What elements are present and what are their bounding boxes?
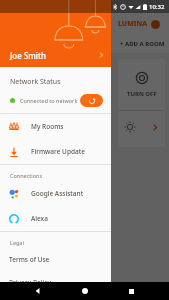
button[interactable]: My Rooms: [0, 114, 111, 139]
staticText: Connections: [10, 172, 43, 179]
button[interactable]: Alexa: [0, 206, 111, 231]
button[interactable]: Google Assistant: [0, 181, 111, 206]
staticText: LUMINA: [118, 19, 147, 29]
staticText: Network Status: [10, 77, 61, 87]
staticText: Alexa: [31, 214, 48, 223]
button[interactable]: Back: [29, 282, 47, 300]
staticText: My Rooms: [31, 122, 64, 131]
staticText: Joe Smith: [10, 50, 97, 61]
staticText: Firmware Update: [31, 147, 85, 156]
staticText: + ADD A ROOM: [120, 40, 165, 48]
button[interactable]: Refresh network: [80, 94, 103, 107]
button[interactable]: Terms of Use: [0, 248, 111, 271]
staticText: Google Assistant: [31, 189, 84, 198]
button[interactable]: Firmware Update: [0, 139, 111, 164]
button[interactable]: Privacy Policy: [0, 271, 111, 294]
staticText: Connected to network: [20, 97, 80, 104]
staticText: 10:32: [149, 3, 165, 11]
staticText: Terms of Use: [9, 255, 50, 264]
button[interactable]: Home: [76, 282, 94, 300]
staticText: Privacy Policy: [9, 278, 51, 287]
staticText: Legal: [10, 239, 24, 246]
button[interactable]: Recents: [122, 282, 140, 300]
button[interactable]: Joe Smith: [0, 43, 111, 67]
staticText: TURN OFF: [127, 90, 157, 98]
